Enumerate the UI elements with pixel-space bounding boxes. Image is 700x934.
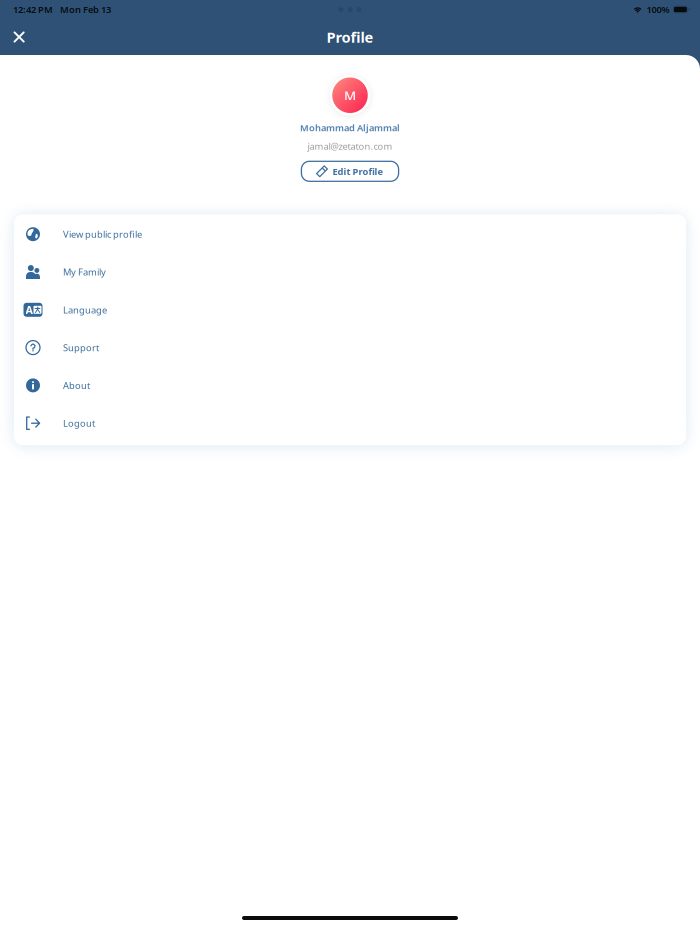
staticText: Profile bbox=[326, 27, 373, 47]
button[interactable]: About bbox=[14, 366, 686, 404]
staticText: View public profile bbox=[63, 228, 142, 240]
staticText: Edit Profile bbox=[333, 165, 384, 177]
staticText: M bbox=[344, 86, 356, 104]
staticText: Mon Feb 13 bbox=[60, 3, 111, 16]
staticText: My Family bbox=[63, 266, 106, 278]
staticText: Mohammad Aljammal bbox=[300, 121, 400, 134]
staticText: 12:42 PM bbox=[13, 3, 53, 16]
button[interactable]: A bbox=[14, 291, 686, 329]
button[interactable]: My Family bbox=[14, 253, 686, 291]
button[interactable]: Support bbox=[14, 329, 686, 366]
staticText: 100% bbox=[646, 3, 669, 16]
staticText: A bbox=[25, 303, 32, 317]
button[interactable]: Edit Profile bbox=[301, 161, 399, 181]
staticText: Language bbox=[63, 304, 107, 316]
button[interactable]: Close bbox=[5, 23, 33, 51]
staticText: About bbox=[63, 379, 90, 392]
staticText: Support bbox=[63, 341, 99, 354]
button[interactable]: View public profile bbox=[14, 215, 686, 253]
button[interactable]: Logout bbox=[14, 404, 686, 442]
staticText: Logout bbox=[63, 417, 95, 429]
staticText: jamal@zetaton.com bbox=[307, 140, 392, 152]
